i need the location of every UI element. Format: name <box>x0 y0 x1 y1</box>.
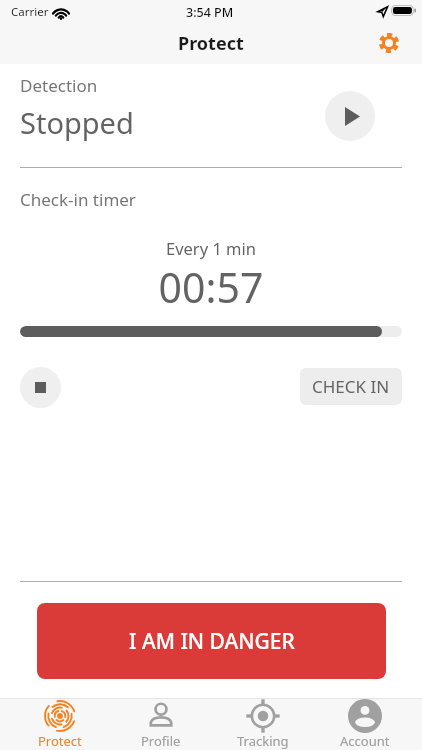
button[interactable]: Tracking <box>212 699 313 750</box>
staticText: Profile <box>141 732 181 749</box>
staticText: Tracking <box>237 732 289 749</box>
staticText: Carrier <box>11 4 49 20</box>
button[interactable]: I AM IN DANGER <box>37 603 386 679</box>
staticText: Account <box>340 732 390 749</box>
button[interactable]: Protect <box>9 699 110 750</box>
staticText: Check-in timer <box>20 188 136 211</box>
button[interactable]: Account <box>314 699 415 750</box>
staticText: Stopped <box>20 103 134 142</box>
button[interactable]: Stop timer <box>20 367 61 408</box>
button[interactable]: Profile <box>110 699 211 750</box>
button[interactable]: Settings <box>373 27 405 59</box>
button[interactable]: Start detection <box>325 91 375 141</box>
staticText: Protect <box>178 31 244 56</box>
staticText: Protect <box>38 732 82 749</box>
button[interactable]: CHECK IN <box>300 368 402 405</box>
staticText: 3:54 PM <box>186 4 234 21</box>
staticText: 00:57 <box>0 259 422 315</box>
staticText: Detection <box>20 74 98 97</box>
staticText: CHECK IN <box>312 375 390 398</box>
staticText: Every 1 min <box>0 237 422 259</box>
staticText: I AM IN DANGER <box>129 627 295 656</box>
